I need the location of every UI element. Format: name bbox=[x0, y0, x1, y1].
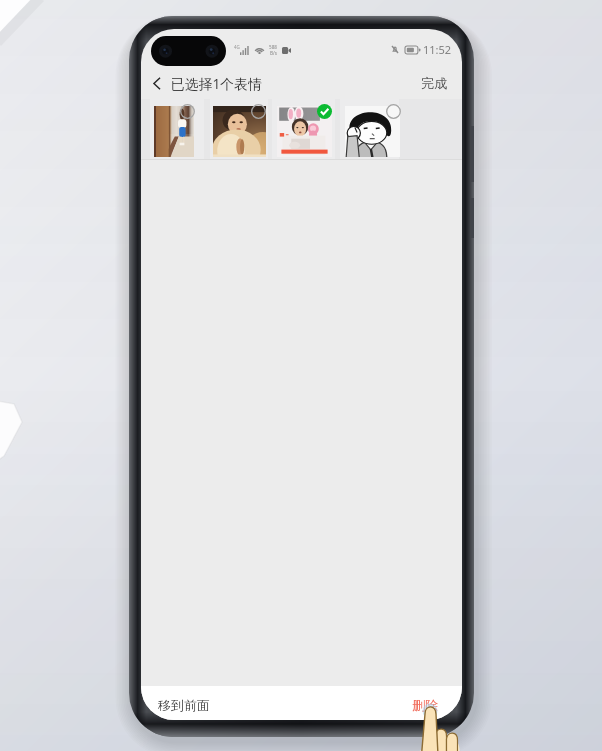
staticText: 11:52 bbox=[423, 42, 452, 57]
button[interactable] bbox=[150, 99, 204, 159]
staticText: 移到前面 bbox=[158, 697, 210, 713]
staticText: 4G bbox=[234, 44, 240, 50]
staticText: 完成 bbox=[421, 75, 448, 92]
button[interactable] bbox=[210, 99, 268, 159]
staticText: 588 bbox=[269, 44, 277, 50]
staticText: 删除 bbox=[412, 697, 438, 713]
button[interactable]: 移到前面 bbox=[155, 691, 213, 719]
staticText: 已选择1个表情 bbox=[171, 74, 262, 93]
staticText: B/s bbox=[270, 50, 277, 56]
button[interactable]: 完成 bbox=[418, 71, 451, 96]
button[interactable]: Back bbox=[147, 71, 167, 95]
button[interactable]: 删除 bbox=[409, 691, 441, 719]
button[interactable] bbox=[340, 99, 399, 159]
button[interactable] bbox=[272, 99, 335, 159]
